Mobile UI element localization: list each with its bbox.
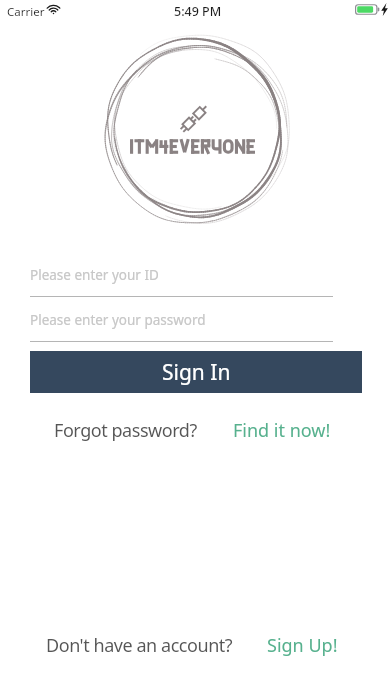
staticText: Carrier	[7, 4, 45, 20]
button[interactable]: Please enter your ID	[30, 266, 333, 297]
button[interactable]: Find it now!	[233, 418, 331, 443]
staticText: Sign Up!	[267, 633, 338, 658]
staticText: Don't have an account?	[46, 633, 233, 658]
other: Wi-Fi	[48, 5, 59, 14]
button[interactable]: Please enter your password	[30, 311, 333, 342]
button[interactable]: Sign In	[30, 351, 362, 393]
staticText: 5:49 PM	[174, 3, 222, 20]
staticText: Forgot password?	[54, 418, 197, 443]
button[interactable]: Sign Up!	[267, 633, 338, 658]
staticText: Find it now!	[233, 418, 331, 443]
staticText: Please enter your ID	[30, 266, 159, 284]
staticText: Please enter your password	[30, 311, 206, 329]
staticText: Sign In	[162, 358, 231, 387]
